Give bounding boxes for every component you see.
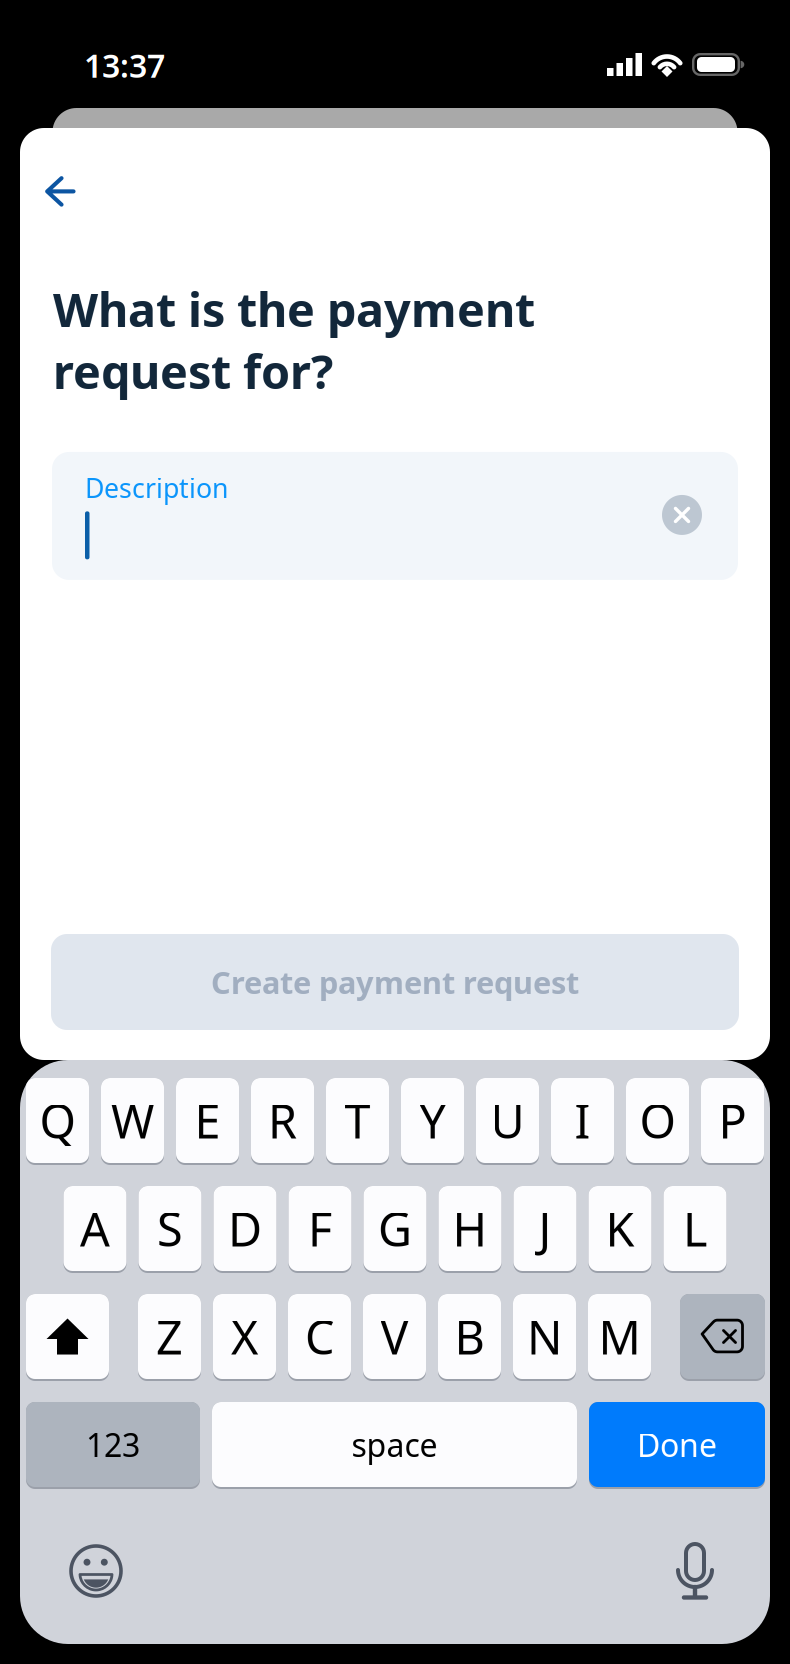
- button[interactable]: A: [63, 1186, 126, 1271]
- button[interactable]: E: [176, 1078, 239, 1163]
- button[interactable]: R: [251, 1078, 314, 1163]
- staticText: T: [344, 1089, 370, 1151]
- staticText: I: [574, 1089, 590, 1151]
- staticText: B: [454, 1305, 484, 1367]
- button[interactable]: Clear text: [662, 495, 702, 535]
- button[interactable]: Back: [20, 128, 96, 221]
- staticText: X: [231, 1305, 258, 1367]
- button[interactable]: Shift: [26, 1294, 109, 1379]
- button[interactable]: Y: [401, 1078, 464, 1163]
- button[interactable]: P: [701, 1078, 764, 1163]
- staticText: E: [194, 1089, 220, 1151]
- button[interactable]: 123: [26, 1402, 200, 1487]
- staticText: Create payment request: [211, 962, 579, 1002]
- button[interactable]: Done: [589, 1402, 765, 1487]
- button[interactable]: Delete: [680, 1294, 765, 1379]
- staticText: L: [683, 1197, 707, 1259]
- button[interactable]: B: [438, 1294, 501, 1379]
- button[interactable]: Q: [26, 1078, 89, 1163]
- staticText: R: [268, 1089, 297, 1151]
- staticText: C: [305, 1305, 334, 1367]
- staticText: J: [538, 1197, 551, 1259]
- staticText: P: [718, 1089, 746, 1151]
- button[interactable]: space: [212, 1402, 577, 1487]
- staticText: G: [378, 1197, 412, 1259]
- staticText: Y: [419, 1089, 445, 1151]
- staticText: V: [380, 1305, 408, 1367]
- staticText: Z: [156, 1305, 183, 1367]
- staticText: 123: [86, 1423, 140, 1466]
- button[interactable]: U: [476, 1078, 539, 1163]
- staticText: H: [452, 1197, 487, 1259]
- staticText: space: [351, 1423, 437, 1466]
- button[interactable]: H: [438, 1186, 501, 1271]
- staticText: U: [490, 1089, 524, 1151]
- button[interactable]: Z: [138, 1294, 201, 1379]
- button[interactable]: O: [626, 1078, 689, 1163]
- staticText: 13:37: [84, 44, 165, 86]
- staticText: A: [80, 1197, 110, 1259]
- button[interactable]: S: [138, 1186, 201, 1271]
- staticText: Description: [85, 470, 228, 505]
- staticText: M: [598, 1305, 640, 1367]
- button[interactable]: Emoji keyboard: [69, 1544, 123, 1598]
- staticText: K: [605, 1197, 634, 1259]
- button[interactable]: W: [101, 1078, 164, 1163]
- staticText: Q: [39, 1089, 75, 1151]
- button[interactable]: D: [213, 1186, 276, 1271]
- button[interactable]: I: [551, 1078, 614, 1163]
- staticText: Done: [637, 1423, 717, 1466]
- button[interactable]: X: [213, 1294, 276, 1379]
- button[interactable]: N: [513, 1294, 576, 1379]
- button[interactable]: T: [326, 1078, 389, 1163]
- button[interactable]: Dictation: [675, 1541, 715, 1601]
- staticText: W: [111, 1089, 154, 1151]
- button[interactable]: V: [363, 1294, 426, 1379]
- button[interactable]: J: [513, 1186, 576, 1271]
- staticText: D: [228, 1197, 262, 1259]
- button[interactable]: Create payment request: [51, 934, 739, 1030]
- staticText: What is the payment request for?: [53, 278, 535, 402]
- button[interactable]: C: [288, 1294, 351, 1379]
- button[interactable]: M: [588, 1294, 651, 1379]
- button[interactable]: F: [288, 1186, 351, 1271]
- staticText: S: [157, 1197, 183, 1259]
- button[interactable]: G: [363, 1186, 426, 1271]
- button[interactable]: L: [663, 1186, 726, 1271]
- button[interactable]: K: [588, 1186, 651, 1271]
- staticText: N: [527, 1305, 562, 1367]
- staticText: F: [308, 1197, 332, 1259]
- staticText: O: [639, 1089, 675, 1151]
